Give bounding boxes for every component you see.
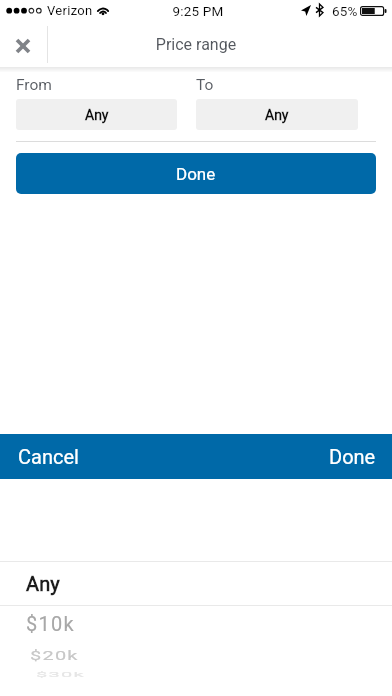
- staticText: Price range: [0, 35, 392, 54]
- button[interactable]: Done: [315, 437, 392, 476]
- staticText: Done: [329, 445, 376, 468]
- button[interactable]: Done: [16, 153, 376, 194]
- staticText: $10k: [26, 612, 76, 635]
- staticText: Any: [85, 107, 109, 123]
- button[interactable]: Any: [16, 99, 177, 130]
- button[interactable]: Close: [0, 22, 45, 67]
- staticText: Verizon: [47, 3, 93, 18]
- staticText: $20k: [30, 648, 79, 663]
- staticText: To: [196, 76, 214, 94]
- staticText: Cancel: [18, 445, 79, 468]
- staticText: From: [16, 76, 52, 94]
- staticText: Any: [26, 572, 60, 595]
- button[interactable]: Cancel: [0, 437, 93, 476]
- staticText: 9:25 PM: [2, 3, 392, 19]
- staticText: Done: [176, 164, 216, 184]
- staticText: 65%: [332, 3, 358, 19]
- staticText: $30k: [36, 671, 86, 678]
- button[interactable]: Any: [0, 562, 392, 605]
- staticText: Any: [265, 107, 289, 123]
- button[interactable]: Any: [196, 99, 358, 130]
